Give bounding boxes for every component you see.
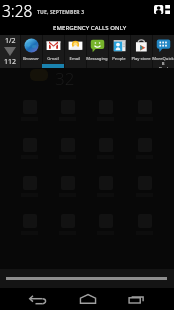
staticText: 1/2	[5, 36, 16, 46]
staticText: 112	[4, 57, 17, 67]
button[interactable]: Gmail	[42, 35, 64, 68]
button[interactable]: Home	[63, 288, 112, 310]
staticText: 32	[55, 67, 75, 90]
staticText: Email	[64, 56, 86, 62]
button[interactable]: Email	[64, 35, 86, 68]
staticText: 3:28	[2, 0, 33, 17]
staticText: People	[108, 56, 130, 62]
button[interactable]: People	[108, 35, 130, 68]
staticText: Gmail	[42, 56, 64, 62]
button[interactable]: Messaging	[86, 35, 108, 68]
staticText: TUE, SEPTEMBER 3	[37, 9, 85, 16]
button[interactable]: Back	[13, 288, 63, 310]
staticText: Messaging	[86, 56, 108, 62]
button[interactable]: Browser	[20, 35, 42, 68]
button[interactable]: Quick settings	[152, 2, 172, 16]
staticText: Browser	[20, 56, 42, 62]
button[interactable]: Page 1 of 2	[0, 35, 20, 68]
button[interactable]: MoreQuickB yBook	[152, 35, 174, 68]
staticText: MoreQuickB yBook	[152, 56, 174, 68]
staticText: Play store	[130, 56, 152, 62]
staticText: EMERGENCY CALLS ONLY	[53, 24, 127, 32]
button[interactable]: Play store	[130, 35, 152, 68]
button[interactable]: Recent apps	[112, 288, 161, 310]
